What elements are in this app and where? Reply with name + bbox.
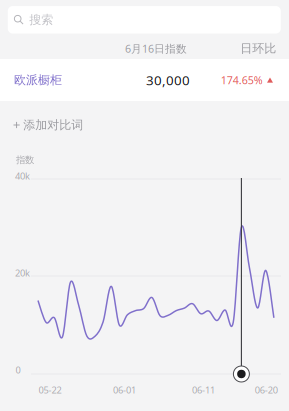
staticText: 0	[15, 364, 20, 376]
button[interactable]: 添加对比词	[0, 112, 289, 138]
staticText: 06-20	[255, 384, 278, 396]
staticText: 30,000	[146, 71, 190, 89]
staticText: 指数	[16, 154, 34, 166]
button[interactable]: 搜索	[8, 6, 281, 34]
staticText: 05-22	[38, 384, 61, 396]
staticText: 日环比	[240, 41, 276, 56]
staticText: 40k	[15, 170, 30, 182]
staticText: 174.65%	[221, 73, 263, 87]
staticText: 添加对比词	[23, 118, 83, 132]
staticText: 20k	[15, 267, 30, 279]
button[interactable]: 欧派橱柜	[0, 59, 289, 101]
staticText: 欧派橱柜	[14, 73, 62, 87]
staticText: 6月16日指数	[125, 41, 187, 56]
staticText: 06-01	[113, 384, 136, 396]
staticText: 06-11	[192, 384, 215, 396]
staticText: 搜索	[29, 12, 53, 27]
